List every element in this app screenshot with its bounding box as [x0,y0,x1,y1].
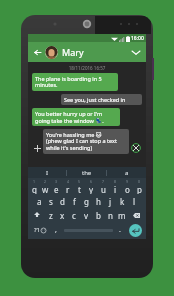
button[interactable]: 4 [62,179,73,194]
button[interactable]: Backspace [128,208,145,222]
button[interactable]: l [128,194,140,208]
staticText: k [120,196,125,207]
button[interactable]: the [67,167,106,178]
staticText: 16:00 [131,35,144,42]
staticText: d [60,196,65,207]
staticText: 0 [138,179,141,184]
button[interactable]: 5 [73,179,85,194]
staticText: t [78,184,81,194]
button[interactable]: s [45,194,56,208]
staticText: c [72,210,76,221]
staticText: 5 [78,179,81,184]
button[interactable]: I [28,167,66,178]
staticText: You better hurry up or I'm going take th… [35,110,104,124]
button[interactable]: 3 [51,179,62,194]
button[interactable]: v [80,208,92,222]
staticText: o [125,184,130,194]
staticText: i [114,184,117,194]
button[interactable]: 2 [40,179,51,194]
staticText: n [108,210,113,221]
button[interactable]: Cancel sending [130,142,142,154]
button[interactable]: 7 [97,179,109,194]
button[interactable]: 9 [121,179,133,194]
staticText: a [37,196,42,207]
staticText: I [46,169,49,177]
button[interactable]: n [104,208,116,222]
staticText: w [42,184,49,194]
staticText: The plane is boarding in 5 minutes. [35,75,102,89]
button[interactable]: Back [31,46,43,58]
staticText: l [133,196,136,207]
staticText: s [49,196,53,207]
staticText: j [109,196,112,207]
staticText: 4 [67,179,70,184]
button[interactable]: j [104,194,116,208]
staticText: 2 [44,179,47,184]
button[interactable]: You better hurry up or I'm going take th… [32,108,120,126]
staticText: . [119,225,121,235]
button[interactable]: Attach [32,143,43,154]
button[interactable]: 1 [29,179,40,194]
staticText: y [89,184,94,194]
staticText: h [96,196,101,207]
button[interactable]: b [92,208,104,222]
button[interactable]: x [56,208,68,222]
staticText: p [137,184,142,194]
button[interactable]: 8 [109,179,121,194]
staticText: You're hassling me 🐱 (phew glad I can st… [46,131,117,152]
button[interactable]: m [116,208,128,222]
button[interactable]: 0 [133,179,145,194]
button[interactable]: Contact photo [45,46,58,59]
staticText: m [118,210,126,221]
staticText: a [125,169,129,177]
button[interactable]: The plane is boarding in 5 minutes. [32,73,118,91]
button[interactable]: a [34,194,45,208]
staticText: z [49,210,53,221]
button[interactable]: Expand [129,45,143,59]
staticText: x [60,210,65,221]
staticText: the [82,169,92,177]
button[interactable]: , [50,222,62,238]
staticText: See you, just checked in [64,96,126,103]
staticText: q [32,184,37,194]
button[interactable]: Send [125,222,145,238]
button[interactable]: . [114,222,125,238]
button[interactable]: Space [62,222,114,238]
button[interactable]: f [68,194,80,208]
button[interactable]: c [68,208,80,222]
button[interactable]: g [80,194,92,208]
button[interactable]: a [107,167,146,178]
staticText: Mary [62,46,84,58]
staticText: ?1 [34,226,41,234]
staticText: 1 [33,179,36,184]
staticText: 6 [90,179,93,184]
button[interactable]: d [56,194,68,208]
staticText: 7 [102,179,105,184]
button[interactable]: k [116,194,128,208]
button[interactable]: h [92,194,104,208]
staticText: , [55,225,57,235]
staticText: r [66,184,70,194]
button[interactable]: z [45,208,56,222]
staticText: 8 [114,179,117,184]
button[interactable]: Shift [29,208,45,222]
button[interactable]: Symbols [29,222,50,238]
staticText: b [96,210,101,221]
staticText: u [101,184,106,194]
staticText: 9 [126,179,129,184]
button[interactable]: See you, just checked in [61,94,142,105]
button[interactable]: 6 [85,179,97,194]
staticText: f [73,196,76,207]
staticText: v [84,210,89,221]
staticText: 18/11/2016 16:57 [32,65,142,71]
staticText: g [84,196,89,207]
staticText: e [54,184,59,194]
button[interactable]: You're hassling me 🐱 (phew glad I can st… [43,129,129,154]
staticText: 3 [55,179,58,184]
